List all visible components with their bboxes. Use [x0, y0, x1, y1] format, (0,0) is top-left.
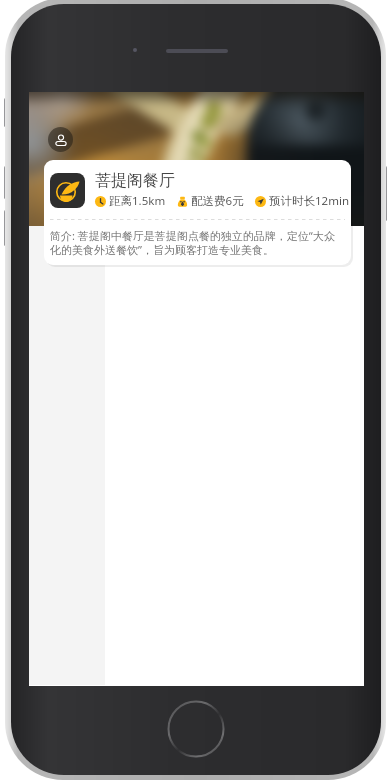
- button[interactable]: Profile: [48, 127, 73, 152]
- staticText: 配送费6元: [191, 193, 244, 209]
- staticText: 菩提阁餐厅: [95, 171, 175, 191]
- staticText: 预计时长12min: [269, 193, 349, 209]
- button[interactable]: 菩提阁餐厅: [44, 160, 351, 265]
- staticText: 距离1.5km: [109, 193, 166, 209]
- staticText: 简介: 菩提阁中餐厅是菩提阁点餐的独立的品牌，定位“大众化的美食外送餐饮”，旨为…: [50, 228, 337, 258]
